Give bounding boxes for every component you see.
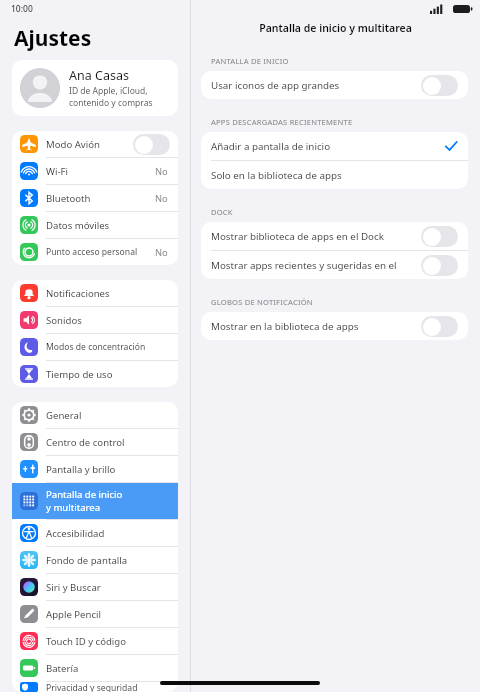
- staticText: No: [155, 246, 168, 259]
- staticText: General: [46, 409, 170, 422]
- staticText: Wi-Fi: [46, 165, 155, 178]
- button[interactable]: Apple Pencil: [12, 601, 178, 627]
- staticText: Touch ID y código: [46, 635, 170, 648]
- button[interactable]: Mostrar apps recientes y sugeridas en el…: [201, 251, 468, 279]
- button[interactable]: Modo Avión: [12, 131, 178, 157]
- staticText: contenido y compras: [69, 97, 153, 109]
- staticText: Centro de control: [46, 436, 170, 449]
- staticText: 10:00: [11, 3, 33, 15]
- staticText: Fondo de pantalla: [46, 554, 170, 567]
- button[interactable]: Batería: [12, 655, 178, 681]
- button[interactable]: Siri y Buscar: [12, 574, 178, 600]
- button[interactable]: Bluetooth: [12, 185, 178, 211]
- button[interactable]: Mostrar en la biblioteca de apps: [201, 312, 468, 340]
- staticText: APPS DESCARGADAS RECIENTEMENTE: [211, 117, 353, 127]
- staticText: PANTALLA DE INICIO: [211, 56, 289, 66]
- staticText: GLOBOS DE NOTIFICACIÓN: [211, 297, 313, 307]
- staticText: Mostrar biblioteca de apps en el Dock: [211, 230, 421, 243]
- staticText: Pantalla de inicio y multitarea: [191, 21, 480, 35]
- button[interactable]: Privacidad y seguridad: [12, 682, 178, 692]
- button[interactable]: Activar: [421, 75, 458, 96]
- staticText: Solo en la biblioteca de apps: [211, 169, 458, 182]
- staticText: Tiempo de uso: [46, 368, 170, 381]
- staticText: Modos de concentración: [46, 341, 170, 353]
- staticText: DOCK: [211, 207, 233, 217]
- button[interactable]: Activar: [421, 255, 458, 276]
- button[interactable]: Pantalla y brillo: [12, 456, 178, 482]
- staticText: Datos móviles: [46, 219, 170, 232]
- button[interactable]: Wi-Fi: [12, 158, 178, 184]
- staticText: ID de Apple, iCloud,: [69, 85, 148, 97]
- staticText: Batería: [46, 662, 170, 675]
- button[interactable]: Fondo de pantalla: [12, 547, 178, 573]
- staticText: Modo Avión: [46, 138, 133, 151]
- staticText: Pantalla y brillo: [46, 463, 170, 476]
- button[interactable]: Centro de control: [12, 429, 178, 455]
- staticText: No: [155, 192, 168, 205]
- staticText: Mostrar en la biblioteca de apps: [211, 320, 421, 333]
- staticText: Apple Pencil: [46, 608, 170, 621]
- button[interactable]: Modos de concentración: [12, 334, 178, 360]
- staticText: Añadir a pantalla de inicio: [211, 140, 444, 153]
- button[interactable]: Sonidos: [12, 307, 178, 333]
- button[interactable]: Activar: [421, 226, 458, 247]
- button[interactable]: Touch ID y código: [12, 628, 178, 654]
- staticText: No: [155, 165, 168, 178]
- staticText: Notificaciones: [46, 287, 170, 300]
- staticText: Bluetooth: [46, 192, 155, 205]
- staticText: Ana Casas: [69, 67, 129, 84]
- button[interactable]: Ana Casas: [12, 60, 178, 116]
- button[interactable]: Punto acceso personal: [12, 239, 178, 265]
- button[interactable]: Accesibilidad: [12, 520, 178, 546]
- staticText: Sonidos: [46, 314, 170, 327]
- button[interactable]: General: [12, 402, 178, 428]
- button[interactable]: Activar: [133, 134, 170, 155]
- staticText: Punto acceso personal: [46, 246, 155, 258]
- button[interactable]: Mostrar biblioteca de apps en el Dock: [201, 222, 468, 250]
- button[interactable]: Notificaciones: [12, 280, 178, 306]
- staticText: Usar iconos de app grandes: [211, 79, 421, 92]
- button[interactable]: Usar iconos de app grandes: [201, 71, 468, 99]
- button[interactable]: Tiempo de uso: [12, 361, 178, 387]
- staticText: Privacidad y seguridad: [46, 682, 170, 692]
- button[interactable]: Añadir a pantalla de inicio: [201, 132, 468, 160]
- staticText: Mostrar apps recientes y sugeridas en el…: [211, 259, 421, 272]
- button[interactable]: Datos móviles: [12, 212, 178, 238]
- staticText: Accesibilidad: [46, 527, 170, 540]
- staticText: Ajustes: [14, 24, 92, 53]
- staticText: y multitarea: [46, 501, 101, 514]
- staticText: Pantalla de inicio: [46, 488, 123, 501]
- other: Seleccionado: [444, 139, 458, 153]
- button[interactable]: Pantalla de inicio: [12, 483, 178, 519]
- staticText: Siri y Buscar: [46, 581, 170, 594]
- button[interactable]: Solo en la biblioteca de apps: [201, 161, 468, 189]
- button[interactable]: Activar: [421, 316, 458, 337]
